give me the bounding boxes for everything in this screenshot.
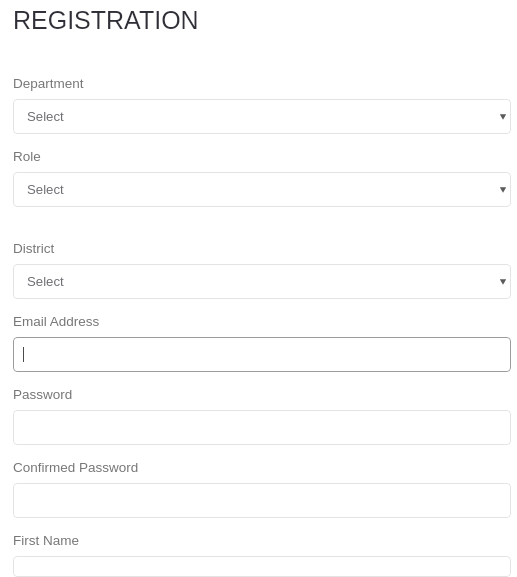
staticText: Select (27, 109, 64, 124)
staticText: Confirmed Password (13, 460, 139, 475)
staticText: Department (13, 76, 84, 91)
button[interactable]: Select (13, 172, 511, 207)
staticText: Role (13, 149, 41, 164)
staticText: REGISTRATION (13, 6, 199, 34)
staticText: District (13, 241, 55, 256)
staticText: Select (27, 182, 64, 197)
staticText: First Name (13, 533, 80, 548)
button[interactable]: Text field (13, 483, 511, 518)
button[interactable]: Select (13, 99, 511, 134)
button[interactable]: Select (13, 264, 511, 299)
button[interactable]: Text field (13, 556, 511, 577)
staticText: Email Address (13, 314, 100, 329)
staticText: Select (27, 274, 64, 289)
button[interactable]: Text field (13, 410, 511, 445)
button[interactable]: Text field (13, 337, 511, 372)
staticText: Password (13, 387, 73, 402)
